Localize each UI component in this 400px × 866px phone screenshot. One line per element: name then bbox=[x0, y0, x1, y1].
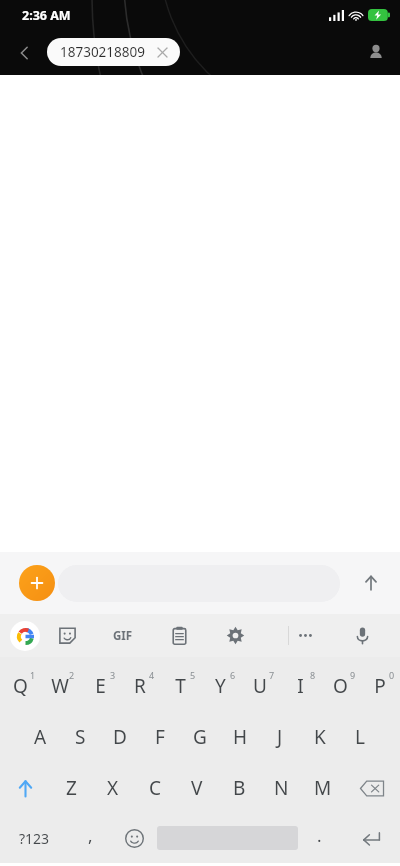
staticText: U bbox=[253, 673, 267, 699]
button[interactable]: Emoji bbox=[112, 815, 157, 861]
staticText: . bbox=[317, 824, 322, 847]
button[interactable]: P bbox=[360, 662, 400, 710]
button[interactable]: Google search bbox=[10, 621, 40, 651]
staticText: B bbox=[233, 775, 246, 801]
button[interactable]: I bbox=[280, 662, 320, 710]
staticText: 18730218809 bbox=[60, 43, 145, 61]
button[interactable]: Back bbox=[8, 36, 42, 70]
staticText: A bbox=[34, 724, 47, 750]
button[interactable]: S bbox=[60, 713, 100, 761]
button[interactable]: Stickers bbox=[52, 614, 82, 657]
button[interactable]: Voice input bbox=[347, 614, 377, 657]
staticText: V bbox=[191, 775, 203, 801]
button[interactable]: Enter bbox=[341, 815, 400, 861]
button[interactable]: Send bbox=[352, 564, 390, 602]
staticText: Q bbox=[13, 673, 28, 699]
staticText: 2:36 AM bbox=[22, 7, 71, 24]
staticText: 4 bbox=[149, 669, 155, 681]
staticText: 1 bbox=[30, 669, 36, 681]
button[interactable]: T bbox=[160, 662, 200, 710]
staticText: Y bbox=[215, 673, 226, 699]
button[interactable]: Clipboard bbox=[164, 614, 194, 657]
staticText: M bbox=[314, 775, 332, 801]
staticText: ?123 bbox=[19, 829, 50, 848]
staticText: F bbox=[155, 724, 165, 750]
staticText: 5 bbox=[190, 669, 196, 681]
staticText: 9 bbox=[350, 669, 356, 681]
button[interactable]: H bbox=[220, 713, 260, 761]
staticText: N bbox=[274, 775, 289, 801]
button[interactable]: Account bbox=[360, 36, 392, 68]
button[interactable]: C bbox=[134, 764, 176, 812]
staticText: K bbox=[314, 724, 326, 750]
staticText: 2 bbox=[69, 669, 75, 681]
button[interactable]: B bbox=[218, 764, 260, 812]
staticText: T bbox=[175, 673, 186, 699]
button[interactable]: F bbox=[140, 713, 180, 761]
button[interactable]: M bbox=[302, 764, 344, 812]
button[interactable]: Add attachment bbox=[19, 565, 55, 601]
button[interactable]: K bbox=[300, 713, 340, 761]
staticText: O bbox=[333, 673, 348, 699]
button[interactable]: A bbox=[20, 713, 60, 761]
button[interactable]: Settings bbox=[220, 614, 250, 657]
button[interactable]: O bbox=[320, 662, 360, 710]
staticText: H bbox=[233, 724, 248, 750]
button[interactable]: More options bbox=[290, 614, 320, 657]
button[interactable]: X bbox=[92, 764, 134, 812]
staticText: E bbox=[95, 673, 106, 699]
staticText: GIF bbox=[113, 628, 133, 644]
staticText: X bbox=[107, 775, 119, 801]
staticText: , bbox=[88, 824, 93, 847]
button[interactable]: W bbox=[40, 662, 80, 710]
staticText: S bbox=[75, 724, 86, 750]
button[interactable]: GIF bbox=[105, 614, 141, 657]
button[interactable]: Space bbox=[157, 815, 298, 861]
staticText: W bbox=[51, 673, 69, 699]
button[interactable]: Y bbox=[200, 662, 240, 710]
staticText: D bbox=[113, 724, 127, 750]
button[interactable]: U bbox=[240, 662, 280, 710]
button[interactable]: G bbox=[180, 713, 220, 761]
staticText: P bbox=[374, 673, 386, 699]
button[interactable]: . bbox=[298, 815, 341, 861]
button[interactable]: L bbox=[340, 713, 380, 761]
button[interactable]: R bbox=[120, 662, 160, 710]
staticText: 3 bbox=[110, 669, 116, 681]
button[interactable]: Q bbox=[0, 662, 40, 710]
staticText: 8 bbox=[310, 669, 316, 681]
staticText: 6 bbox=[230, 669, 236, 681]
staticText: 0 bbox=[389, 669, 395, 681]
button[interactable]: N bbox=[260, 764, 302, 812]
button[interactable]: Backspace bbox=[344, 764, 400, 812]
button[interactable]: Z bbox=[51, 764, 92, 812]
staticText: G bbox=[193, 724, 207, 750]
button[interactable]: 18730218809 bbox=[47, 38, 180, 66]
staticText: I bbox=[297, 673, 304, 699]
staticText: C bbox=[149, 775, 162, 801]
button[interactable]: , bbox=[69, 815, 112, 861]
staticText: Z bbox=[66, 775, 77, 801]
button[interactable]: J bbox=[260, 713, 300, 761]
button[interactable]: ?123 bbox=[0, 815, 69, 861]
staticText: L bbox=[355, 724, 365, 750]
button[interactable]: D bbox=[100, 713, 140, 761]
staticText: 7 bbox=[269, 669, 275, 681]
button[interactable]: E bbox=[80, 662, 120, 710]
button[interactable]: Clear bbox=[153, 43, 171, 61]
staticText: R bbox=[134, 673, 146, 699]
button[interactable]: V bbox=[176, 764, 218, 812]
button[interactable]: Shift bbox=[0, 764, 51, 812]
staticText: J bbox=[277, 724, 283, 750]
